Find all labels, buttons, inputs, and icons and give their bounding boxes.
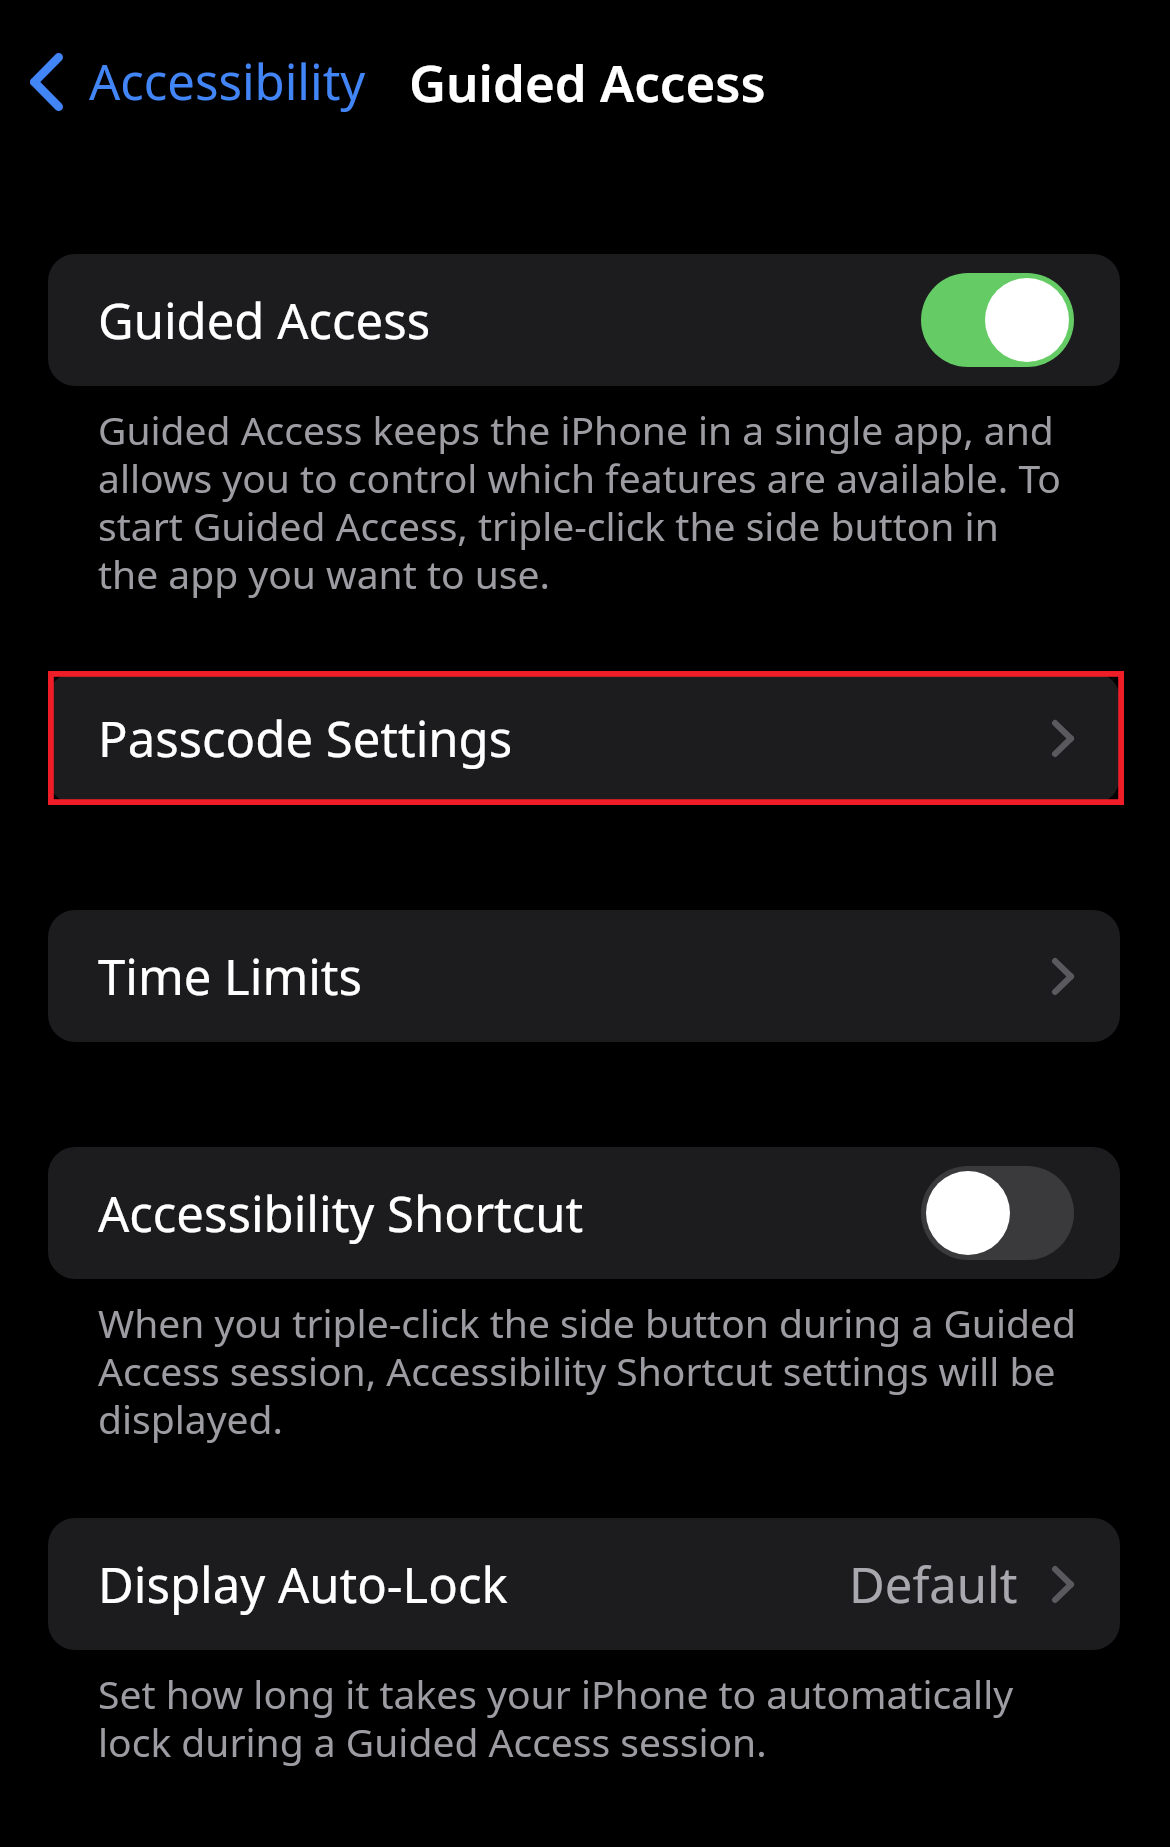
button[interactable]: Back to Accessibility	[30, 48, 366, 115]
staticText: Accessibility Shortcut	[98, 1180, 584, 1247]
staticText: Default	[849, 1551, 1018, 1618]
button[interactable]: Toggle on	[921, 273, 1074, 367]
button[interactable]: Toggle off	[921, 1166, 1074, 1260]
staticText: Set how long it takes your iPhone to aut…	[98, 1671, 1098, 1767]
button[interactable]: Accessibility Shortcut	[48, 1147, 1120, 1279]
staticText: Time Limits	[98, 943, 363, 1010]
button[interactable]: Display Auto-Lock	[48, 1518, 1120, 1650]
staticText: Guided Access	[409, 47, 766, 116]
staticText: When you triple-click the side button du…	[98, 1300, 1098, 1444]
button[interactable]: Time Limits	[48, 910, 1120, 1042]
staticText: Accessibility	[89, 48, 366, 115]
button[interactable]: Guided Access	[48, 254, 1120, 386]
staticText: Display Auto-Lock	[98, 1551, 508, 1618]
button[interactable]: Passcode Settings	[48, 672, 1120, 804]
staticText: Guided Access keeps the iPhone in a sing…	[98, 407, 1098, 599]
staticText: Passcode Settings	[98, 705, 513, 772]
staticText: Guided Access	[98, 287, 431, 354]
